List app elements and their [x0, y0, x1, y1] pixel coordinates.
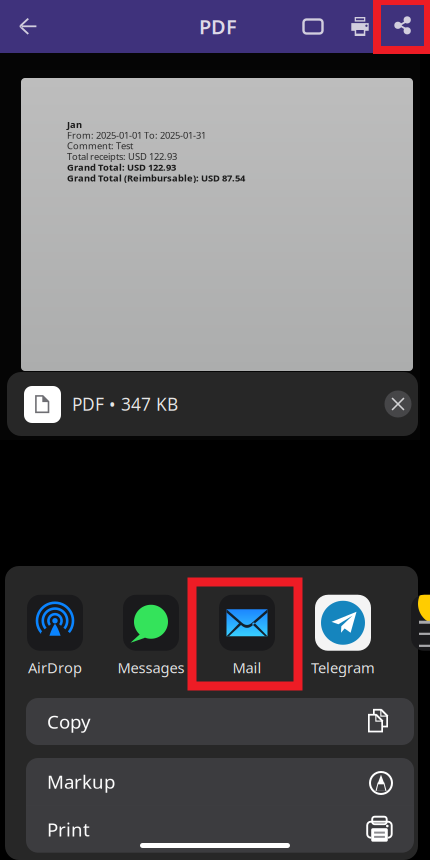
staticText: Grand Total: USD 122.93: [67, 161, 176, 173]
staticText: Markup: [47, 769, 115, 794]
button[interactable]: Print: [26, 806, 414, 853]
staticText: Mail: [232, 658, 261, 677]
staticText: From: 2025-01-01 To: 2025-01-31: [67, 129, 206, 141]
button[interactable]: Telegram: [295, 597, 391, 675]
staticText: Total receipts: USD 122.93: [67, 150, 177, 163]
button[interactable]: Mail: [199, 597, 295, 675]
staticText: Print: [47, 817, 90, 842]
staticText: Messages: [117, 658, 184, 677]
button[interactable]: Back: [5, 0, 51, 53]
staticText: Telegram: [311, 658, 375, 677]
button[interactable]: Print: [338, 0, 382, 53]
button[interactable]: Markup: [26, 758, 414, 805]
button[interactable]: Remove attachment: [376, 382, 420, 426]
button[interactable]: Copy: [26, 698, 414, 745]
staticText: Copy: [47, 709, 91, 734]
button[interactable]: [391, 597, 430, 675]
button[interactable]: Messages: [103, 597, 199, 675]
button[interactable]: Page fit: [291, 0, 335, 53]
staticText: Grand Total (Reimbursable): USD 87.54: [67, 172, 245, 184]
staticText: Comment: Test: [67, 140, 133, 152]
button[interactable]: AirDrop: [7, 597, 103, 675]
staticText: PDF: [199, 13, 237, 40]
staticText: Jan: [67, 118, 82, 131]
staticText: AirDrop: [28, 658, 82, 677]
button[interactable]: Share: [377, 1, 428, 50]
staticText: PDF • 347 KB: [72, 392, 178, 415]
